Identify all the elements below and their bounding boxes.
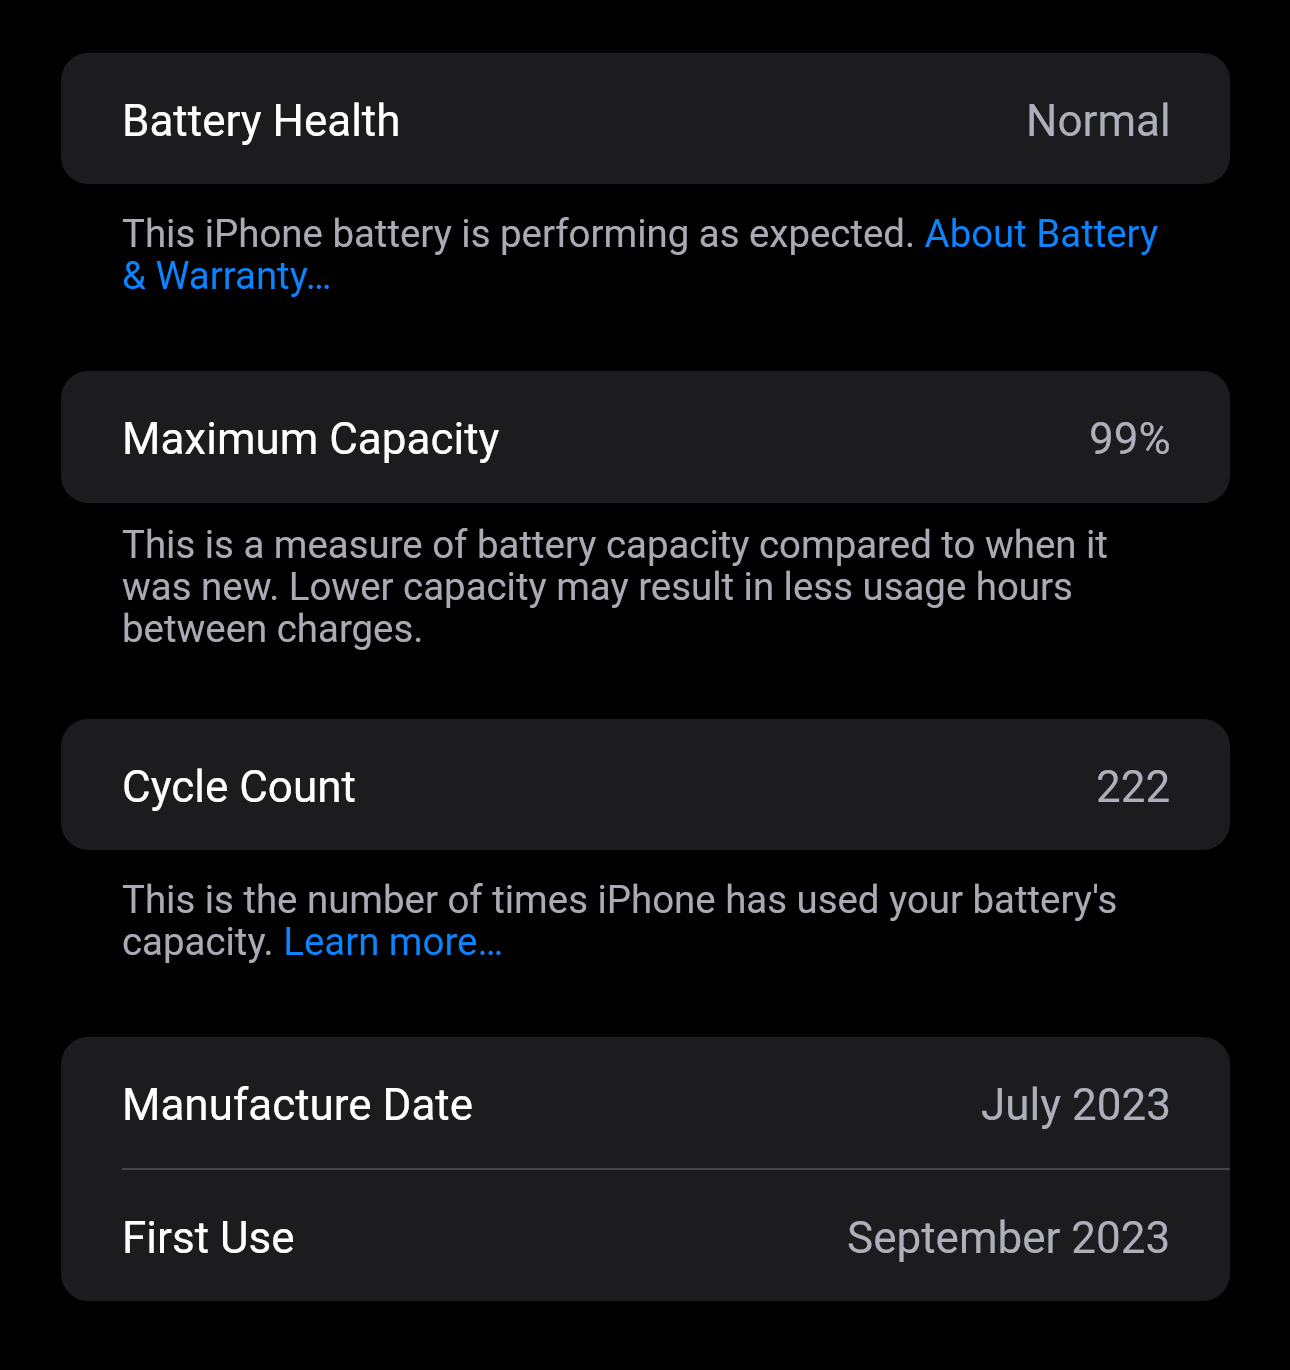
button[interactable]: This iPhone battery is performing as exp… (122, 214, 1176, 298)
staticText: 222 (1096, 761, 1171, 813)
staticText: Manufacture Date (122, 1079, 474, 1131)
button[interactable]: This is a measure of battery capacity co… (122, 525, 1176, 651)
button[interactable]: This is the number of times iPhone has u… (122, 880, 1176, 964)
staticText: This is a measure of battery capacity co… (122, 525, 1176, 651)
staticText: Maximum Capacity (122, 413, 500, 465)
staticText: This iPhone battery is performing as exp… (122, 214, 1176, 298)
staticText: 99% (1089, 413, 1171, 465)
staticText: This is the number of times iPhone has u… (122, 880, 1176, 964)
staticText: Cycle Count (122, 761, 356, 813)
button[interactable]: Manufacture Date (61, 1037, 1230, 1168)
staticText: September 2023 (847, 1212, 1171, 1264)
staticText: Battery Health (122, 95, 401, 147)
button[interactable]: Cycle Count (61, 719, 1230, 850)
staticText: July 2023 (981, 1079, 1171, 1131)
button[interactable]: First Use (61, 1170, 1230, 1301)
button[interactable]: Maximum Capacity (61, 371, 1230, 503)
staticText: Normal (1026, 95, 1171, 147)
button[interactable]: Battery Health (61, 53, 1230, 184)
staticText: First Use (122, 1212, 295, 1264)
